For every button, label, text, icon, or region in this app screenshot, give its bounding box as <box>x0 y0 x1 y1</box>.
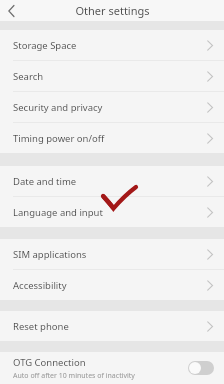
staticText: Timing power on/off <box>13 132 105 145</box>
staticText: Storage Space <box>13 39 77 52</box>
button[interactable]: Search <box>0 61 224 91</box>
staticText: Language and input <box>13 206 103 219</box>
button[interactable]: Date and time <box>0 166 224 196</box>
button[interactable]: SIM applications <box>0 239 224 269</box>
staticText: Date and time <box>13 175 77 188</box>
staticText: Other settings <box>75 3 150 18</box>
button[interactable]: Storage Space <box>0 30 224 60</box>
button[interactable]: Reset phone <box>0 311 224 341</box>
button[interactable]: Back <box>0 0 22 21</box>
staticText: Reset phone <box>13 320 69 333</box>
button[interactable]: OTG Connection toggle <box>188 361 214 375</box>
staticText: Search <box>13 70 44 83</box>
button[interactable]: Timing power on/off <box>0 123 224 153</box>
staticText: SIM applications <box>13 248 87 261</box>
button[interactable]: Accessibility <box>0 270 224 300</box>
staticText: Security and privacy <box>13 101 103 114</box>
staticText: OTG Connection <box>13 356 86 369</box>
staticText: Accessibility <box>13 279 67 292</box>
button[interactable]: Security and privacy <box>0 92 224 122</box>
button[interactable]: Language and input <box>0 197 224 227</box>
button[interactable]: OTG Connection <box>0 352 224 384</box>
staticText: Auto off after 10 minutes of inactivity <box>13 371 135 381</box>
